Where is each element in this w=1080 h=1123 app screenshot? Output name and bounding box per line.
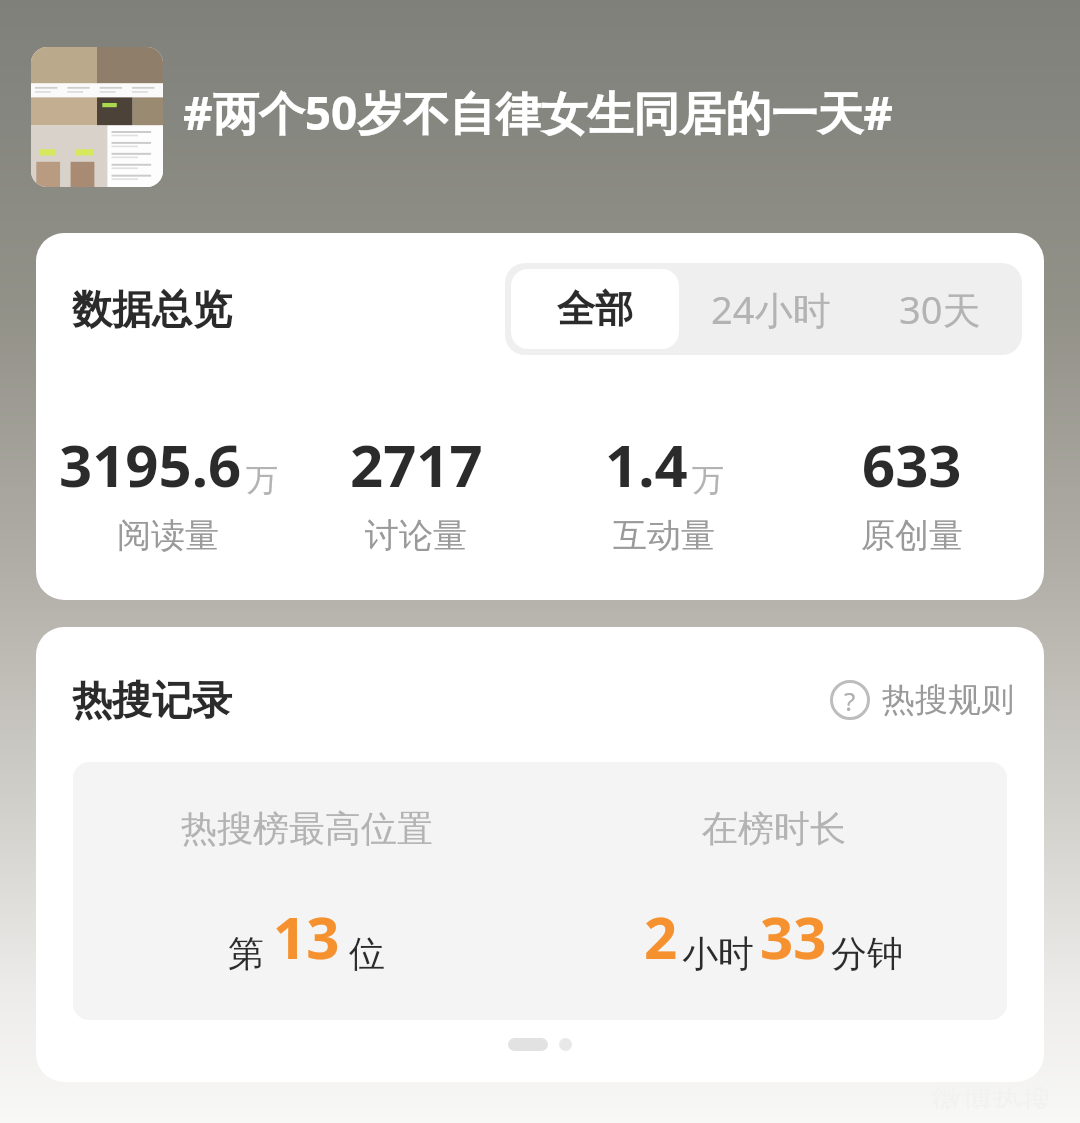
staticText: #两个50岁不自律女生同居的一天# [183,81,894,144]
staticText: ? [844,683,856,718]
staticText: 位 [349,931,385,976]
staticText: 万 [246,460,278,500]
staticText: 633 [862,425,962,504]
staticText: 讨论量 [365,514,467,557]
staticText: 2717 [350,425,483,504]
button[interactable]: 全部 [511,269,679,349]
button[interactable]: 1.4 [540,425,788,557]
button[interactable]: 热搜规则帮助 [830,679,1014,721]
staticText: 33 [760,897,827,976]
staticText: 万 [692,460,724,500]
staticText: 分钟 [831,931,903,976]
button[interactable]: 在榜时长 [540,762,1007,1020]
staticText: 互动量 [613,514,715,557]
staticText: 数据总览 [72,284,232,334]
staticText: 1.4 [605,425,688,504]
staticText: 第 [228,931,264,976]
staticText: 热搜规则 [882,679,1014,721]
staticText: 原创量 [861,514,963,557]
staticText: 30天 [899,283,981,335]
button[interactable]: 24小时 [685,263,857,355]
staticText: 在榜时长 [702,806,846,851]
other: 热搜规则帮助 [830,680,870,720]
staticText: 2 [644,897,678,976]
staticText: 3195.6 [59,425,242,504]
staticText: 24小时 [711,283,831,335]
button[interactable]: 话题预览图 [31,47,163,187]
button[interactable]: 热搜榜最高位置 [73,762,540,1020]
button[interactable]: 3195.6 [44,425,292,557]
staticText: 热搜榜最高位置 [181,806,433,851]
button[interactable]: 633 [788,425,1036,557]
staticText: 小时 [682,931,754,976]
staticText: 13 [273,897,340,976]
button[interactable]: 2717 [292,425,540,557]
button[interactable]: 30天 [857,263,1022,355]
staticText: 热搜记录 [72,675,232,725]
staticText: 全部 [557,285,633,333]
staticText: 阅读量 [117,514,219,557]
